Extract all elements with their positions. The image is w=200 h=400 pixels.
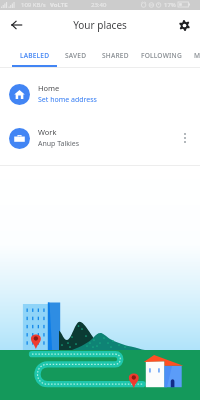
staticText: SHARED <box>102 51 129 60</box>
staticText: FOLLOWING <box>141 51 182 60</box>
staticText: M <box>194 51 200 60</box>
button[interactable]: SHARED <box>95 44 136 66</box>
staticText: LABELED <box>20 51 50 60</box>
staticText: 17% <box>164 1 176 9</box>
staticText: Set home address <box>38 95 97 105</box>
button[interactable]: Settings <box>168 10 200 40</box>
staticText: 109 KB/s <box>21 1 46 9</box>
button[interactable]: Back <box>0 10 32 40</box>
button[interactable]: SAVED <box>57 44 95 66</box>
staticText: VoLTE <box>50 1 68 9</box>
staticText: Anup Talkies <box>38 139 80 149</box>
button[interactable]: M <box>186 44 200 66</box>
staticText: 23:40 <box>91 1 107 9</box>
staticText: Your places <box>32 18 168 32</box>
button[interactable]: Work <box>0 116 200 160</box>
button[interactable]: LABELED <box>12 44 57 66</box>
button[interactable]: FOLLOWING <box>136 44 186 66</box>
staticText: Work <box>38 127 57 137</box>
button[interactable]: More options <box>176 129 194 147</box>
staticText: Home <box>38 83 60 93</box>
staticText: SAVED <box>65 51 87 60</box>
button[interactable]: Home <box>0 72 200 116</box>
